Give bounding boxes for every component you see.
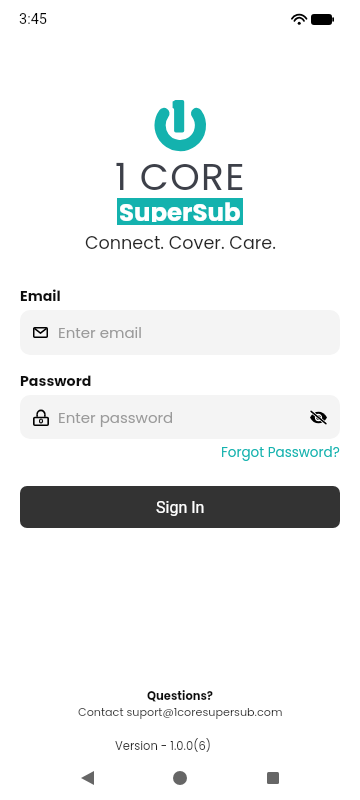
button[interactable]: Enter email	[20, 310, 340, 355]
button[interactable]: Recent apps	[251, 756, 295, 800]
staticText: Sign In	[156, 498, 205, 517]
staticText: SuperSub	[119, 195, 241, 222]
button[interactable]: Show password	[307, 406, 329, 428]
button[interactable]: Sign In	[20, 486, 340, 528]
button[interactable]: Back	[65, 756, 109, 800]
staticText: Enter password	[58, 407, 174, 428]
staticText: Email	[20, 286, 61, 306]
staticText: 1 CORE	[115, 151, 246, 204]
button[interactable]: Home	[158, 756, 202, 800]
staticText: Enter email	[58, 322, 142, 343]
staticText: Contact suport@1coresupersub.com	[78, 704, 283, 720]
staticText: 3:45	[19, 11, 47, 28]
staticText: Version - 1.0.0(6)	[115, 738, 211, 754]
staticText: Questions?	[147, 688, 214, 704]
button[interactable]: Forgot Password?	[221, 443, 340, 462]
staticText: Connect. Cover. Care.	[85, 231, 276, 256]
button[interactable]: Enter password	[20, 395, 340, 439]
staticText: Password	[20, 371, 92, 391]
